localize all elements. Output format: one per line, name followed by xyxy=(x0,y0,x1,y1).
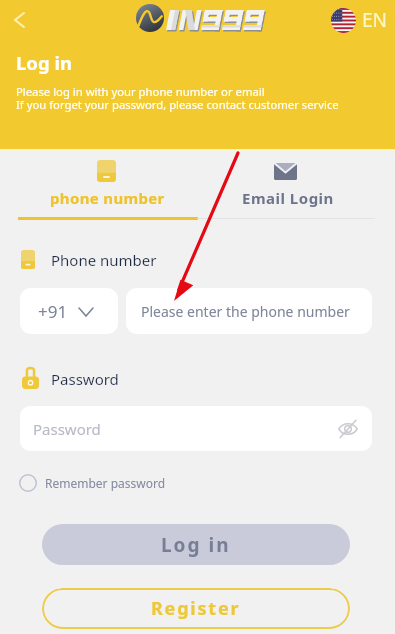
button[interactable]: EN xyxy=(331,7,388,33)
button[interactable]: Back xyxy=(2,3,36,37)
staticText: Log in xyxy=(16,50,72,75)
button[interactable]: Show password xyxy=(336,417,360,441)
button[interactable]: phone number xyxy=(18,150,198,220)
staticText: +91 xyxy=(38,300,68,323)
staticText: Email Login xyxy=(242,188,334,208)
button[interactable]: Email Login xyxy=(208,150,368,215)
staticText: EN xyxy=(362,7,388,33)
button[interactable]: +91 xyxy=(20,288,118,334)
staticText: Log in xyxy=(161,532,231,558)
staticText: Please log in with your phone number or … xyxy=(16,84,265,99)
button[interactable]: Log in xyxy=(42,524,350,565)
staticText: Phone number xyxy=(51,250,157,270)
button[interactable]: Register xyxy=(42,588,350,629)
staticText: Password xyxy=(51,369,119,389)
button[interactable]: Remember password xyxy=(19,474,166,492)
button[interactable]: Please enter the phone number xyxy=(126,288,372,334)
staticText: Password xyxy=(33,419,101,439)
staticText: Register xyxy=(151,596,241,621)
staticText: Remember password xyxy=(45,475,166,491)
staticText: If you forget your password, please cont… xyxy=(16,97,339,112)
button[interactable]: Password xyxy=(20,406,372,451)
staticText: phone number xyxy=(50,188,165,208)
staticText: Please enter the phone number xyxy=(141,302,350,321)
